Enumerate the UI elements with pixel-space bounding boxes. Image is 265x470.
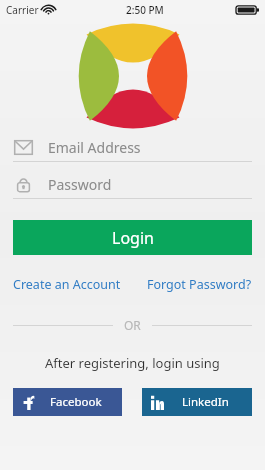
- staticText: 2:50 PM: [126, 3, 164, 17]
- button[interactable]: Facebook: [13, 388, 122, 416]
- button[interactable]: Login: [13, 220, 252, 255]
- staticText: After registering, login using: [45, 354, 220, 372]
- staticText: Login: [112, 227, 154, 249]
- button[interactable]: Forgot Password?: [147, 272, 252, 297]
- staticText: Email Address: [48, 138, 141, 157]
- staticText: LinkedIn: [182, 394, 229, 410]
- button[interactable]: Email Address: [13, 134, 252, 162]
- staticText: Carrier: [6, 3, 39, 17]
- button[interactable]: Create an Account: [13, 272, 121, 297]
- staticText: Create an Account: [13, 276, 121, 293]
- staticText: OR: [124, 317, 141, 333]
- staticText: Forgot Password?: [147, 276, 252, 293]
- button[interactable]: LinkedIn: [142, 388, 252, 416]
- button[interactable]: Password: [13, 171, 252, 199]
- staticText: Facebook: [50, 394, 102, 410]
- staticText: Password: [48, 175, 112, 194]
